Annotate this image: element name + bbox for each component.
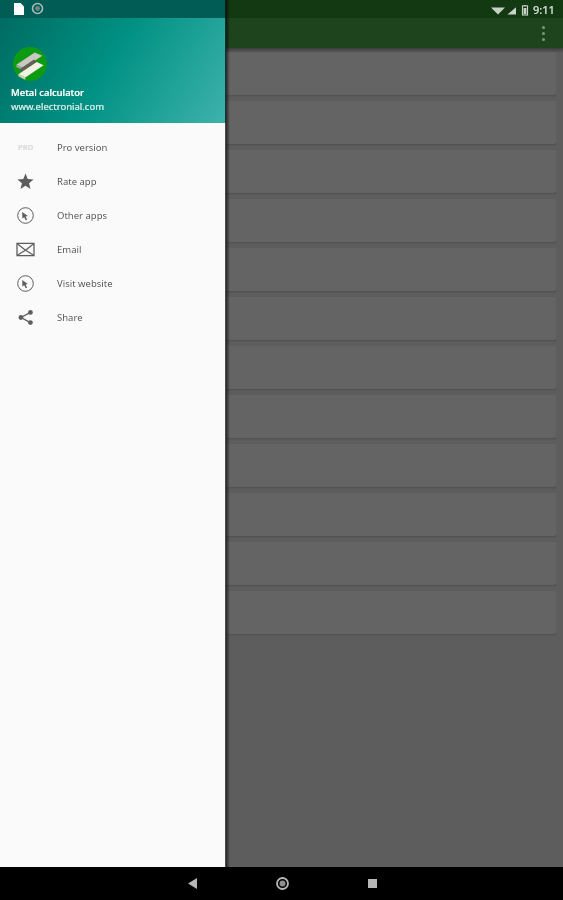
staticText: Email [57, 243, 82, 256]
button[interactable]: Other apps [0, 198, 226, 232]
button[interactable] [0, 591, 556, 634]
button[interactable]: PRO [0, 130, 226, 164]
staticText: www.electronial.com [11, 100, 105, 113]
staticText: Share [57, 311, 83, 324]
button[interactable] [0, 199, 556, 242]
button[interactable] [0, 444, 556, 487]
staticText: Rate app [57, 175, 97, 188]
button[interactable]: Share [0, 300, 226, 334]
button[interactable] [0, 52, 556, 95]
staticText: Metal calculator [11, 86, 85, 99]
staticText: Visit website [57, 277, 113, 290]
button[interactable]: Back [172, 867, 212, 900]
button[interactable] [0, 101, 556, 144]
staticText: Pro version [57, 141, 108, 154]
button[interactable] [0, 395, 556, 438]
button[interactable] [0, 346, 556, 389]
button[interactable] [0, 248, 556, 291]
staticText: 9:11 [533, 2, 555, 17]
staticText: Other apps [57, 209, 108, 222]
button[interactable] [0, 150, 556, 193]
button[interactable]: More options [523, 18, 563, 48]
button[interactable] [0, 493, 556, 536]
button[interactable]: Visit website [0, 266, 226, 300]
button[interactable]: Rate app [0, 164, 226, 198]
button[interactable] [0, 297, 556, 340]
button[interactable]: Email [0, 232, 226, 266]
staticText: PRO [18, 142, 34, 152]
button[interactable]: Recents [352, 867, 392, 900]
button[interactable]: Home [262, 867, 302, 900]
button[interactable] [0, 542, 556, 585]
